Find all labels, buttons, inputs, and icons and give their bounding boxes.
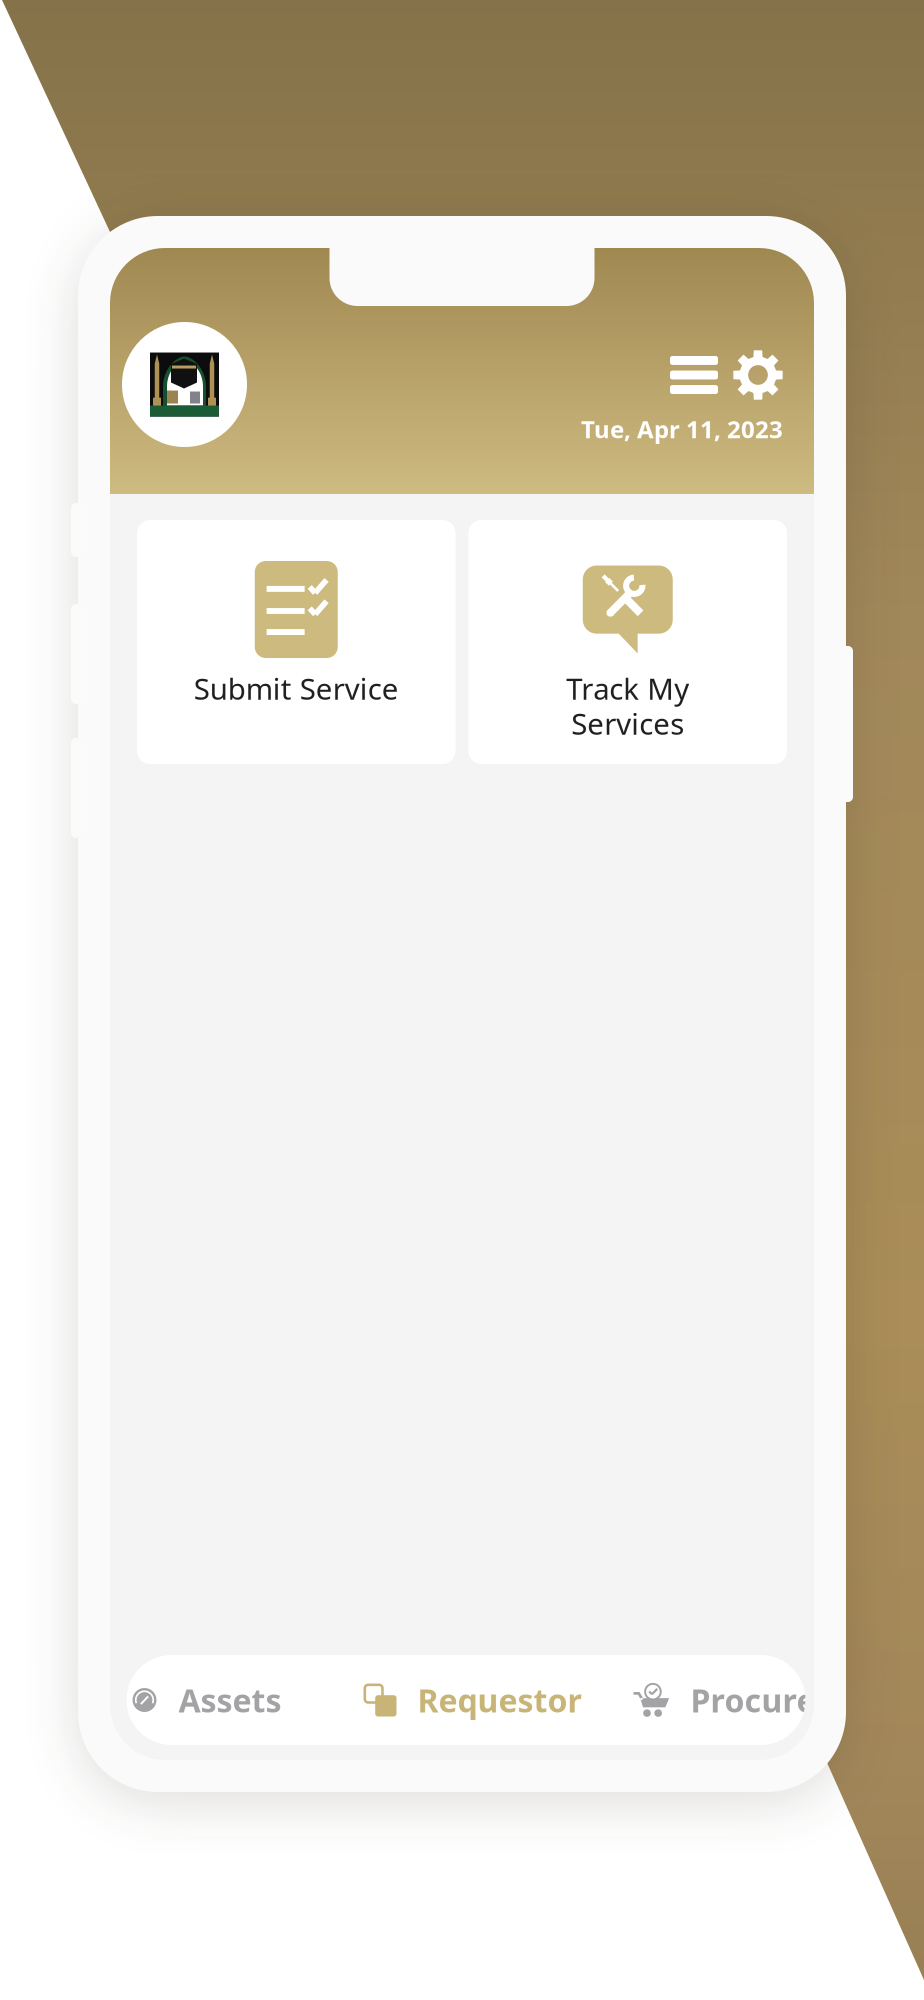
button[interactable]: Menu: [670, 356, 718, 394]
button[interactable]: Assets: [132, 1679, 281, 1721]
staticText: Procurement: [690, 1679, 900, 1721]
button[interactable]: Procurement: [633, 1679, 900, 1721]
staticText: Tue, Apr 11, 2023: [581, 413, 783, 445]
staticText: Submit Service: [194, 669, 399, 708]
staticText: Requestor: [417, 1679, 581, 1721]
button[interactable]: Settings: [733, 350, 783, 400]
button[interactable]: Track My: [468, 520, 787, 764]
staticText: Track My: [566, 669, 689, 708]
staticText: Services: [571, 704, 684, 743]
button[interactable]: Requestor: [363, 1679, 581, 1721]
button[interactable]: Submit Service: [137, 520, 455, 764]
staticText: Assets: [178, 1679, 281, 1721]
